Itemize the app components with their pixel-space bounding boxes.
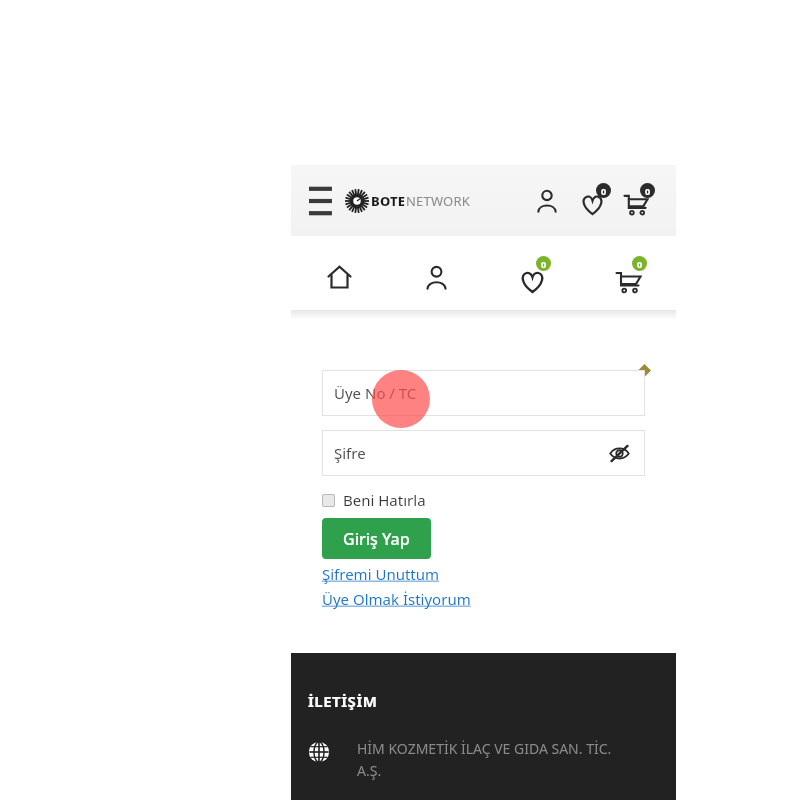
button[interactable]: Şifremi Unuttum (322, 564, 440, 584)
button[interactable]: Account (530, 184, 564, 218)
staticText: Üye Olmak İstiyorum (322, 589, 471, 609)
staticText: HİM KOZMETİK İLAÇ VE GIDA SAN. TİC. A.Ş. (357, 739, 612, 780)
staticText: Üye No / TC (334, 383, 417, 403)
button[interactable]: Favorites (572, 181, 612, 221)
button[interactable]: Home (291, 244, 388, 310)
button[interactable]: Üye Olmak İstiyorum (322, 589, 471, 609)
staticText: NETWORK (406, 192, 470, 210)
button[interactable]: Show password (607, 441, 631, 465)
staticText: İLETİŞİM (308, 691, 378, 711)
staticText: 0 (541, 258, 547, 270)
button[interactable]: Profile (388, 244, 484, 310)
staticText: Şifre (334, 443, 366, 463)
button[interactable]: Giriş Yap (322, 518, 431, 559)
staticText: Şifremi Unuttum (322, 564, 440, 584)
staticText: 0 (637, 258, 643, 270)
staticText: Giriş Yap (343, 528, 410, 550)
button[interactable]: Beni Hatırla (322, 490, 426, 510)
staticText: 0 (645, 185, 651, 197)
staticText: BOTE (371, 192, 406, 210)
button[interactable]: Şifre (322, 430, 645, 476)
button[interactable]: BOTE (345, 189, 470, 213)
staticText: 0 (601, 185, 607, 197)
button[interactable]: Üye No / TC (322, 370, 645, 416)
button[interactable]: Cart (580, 244, 676, 310)
staticText: Beni Hatırla (343, 490, 426, 510)
button[interactable]: Favorites (484, 244, 580, 310)
button[interactable]: Menu (309, 188, 337, 214)
button[interactable]: Cart (616, 181, 656, 221)
